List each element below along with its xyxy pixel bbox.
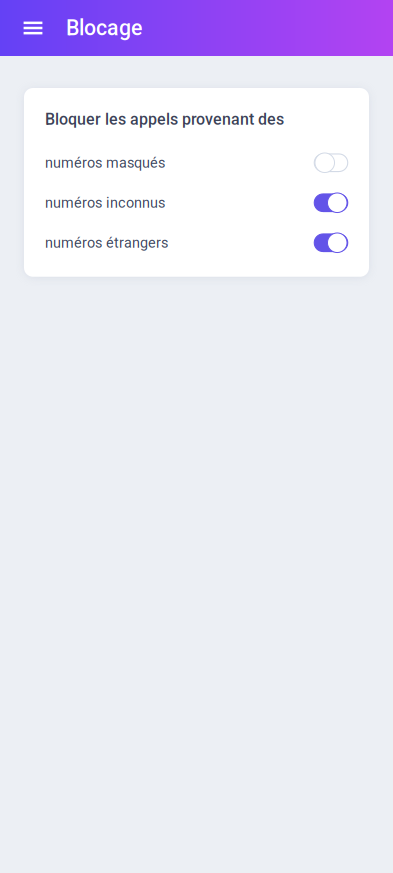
staticText: numéros inconnus	[45, 194, 165, 211]
staticText: Bloquer les appels provenant des	[45, 110, 284, 129]
button[interactable]: 0	[45, 143, 348, 183]
staticText: numéros étrangers	[45, 234, 168, 251]
button[interactable]: Menu	[16, 0, 50, 56]
button[interactable]: 1	[45, 183, 348, 223]
staticText: Blocage	[66, 15, 142, 40]
staticText: numéros masqués	[45, 154, 165, 171]
button[interactable]: 1	[45, 223, 348, 263]
